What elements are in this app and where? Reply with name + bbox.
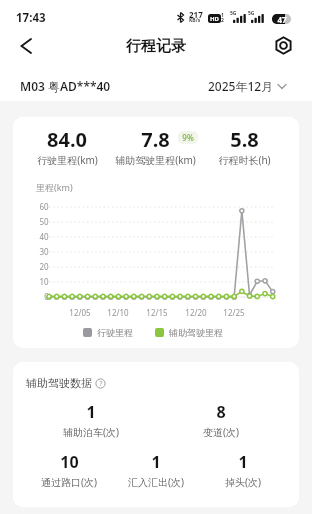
staticText: 通过路口(次) xyxy=(41,475,97,489)
staticText: 20 xyxy=(39,261,49,272)
staticText: 2 xyxy=(221,17,224,24)
staticText: 12/15 xyxy=(146,307,168,318)
staticText: 行程记录 xyxy=(126,37,186,56)
staticText: HD xyxy=(210,15,219,23)
staticText: 30 xyxy=(39,246,49,257)
staticText: 行驶里程 xyxy=(97,327,133,338)
staticText: 辅助驾驶数据 xyxy=(26,376,92,390)
staticText: 17:43 xyxy=(16,10,46,26)
button[interactable]: 10 xyxy=(26,451,112,489)
staticText: 1 xyxy=(151,451,161,473)
button[interactable]: 2025年12月 xyxy=(200,74,286,98)
staticText: 2025年12月 xyxy=(208,78,274,94)
staticText: 5G xyxy=(248,10,255,17)
staticText: 217 xyxy=(189,9,203,20)
button[interactable]: 1 xyxy=(199,451,286,489)
staticText: 掉头(次) xyxy=(225,475,261,489)
staticText: 行驶里程(km) xyxy=(37,153,98,167)
staticText: 里程(km) xyxy=(36,181,73,193)
staticText: 0 xyxy=(44,291,49,302)
button[interactable] xyxy=(270,32,296,58)
staticText: 12/25 xyxy=(223,307,245,318)
staticText: 47 xyxy=(277,14,287,24)
staticText: 12/10 xyxy=(107,307,129,318)
staticText: 12/20 xyxy=(185,307,207,318)
button[interactable] xyxy=(12,32,40,60)
staticText: 10 xyxy=(39,276,49,287)
staticText: 5.8 xyxy=(230,126,259,152)
staticText: 1 xyxy=(86,401,96,423)
staticText: 行程时长(h) xyxy=(218,153,271,167)
staticText: 60 xyxy=(39,201,49,212)
staticText: 变道(次) xyxy=(203,425,239,439)
button[interactable]: 1 xyxy=(26,401,156,439)
staticText: 9% xyxy=(182,132,194,143)
staticText: 汇入汇出(次) xyxy=(128,475,184,489)
staticText: KB/s xyxy=(189,17,201,24)
staticText: 辅助驾驶里程(km) xyxy=(115,153,196,167)
staticText: 辅助泊车(次) xyxy=(63,425,119,439)
staticText: ? xyxy=(99,379,103,389)
staticText: 12/05 xyxy=(69,307,91,318)
staticText: M03 粤AD***40 xyxy=(20,78,111,94)
staticText: 8 xyxy=(216,401,226,423)
staticText: 辅助驾驶里程 xyxy=(169,327,223,338)
staticText: 50 xyxy=(39,216,49,227)
staticText: 1 xyxy=(221,12,224,19)
staticText: 1 xyxy=(238,451,248,473)
button[interactable]: 8 xyxy=(156,401,286,439)
staticText: 10 xyxy=(60,451,79,473)
staticText: 5G xyxy=(230,10,237,17)
staticText: 40 xyxy=(39,231,49,242)
staticText: 84.0 xyxy=(47,126,87,152)
button[interactable]: 1 xyxy=(112,451,199,489)
button[interactable]: M03 粤AD***40 xyxy=(10,74,111,98)
staticText: 7.8 xyxy=(141,126,170,152)
